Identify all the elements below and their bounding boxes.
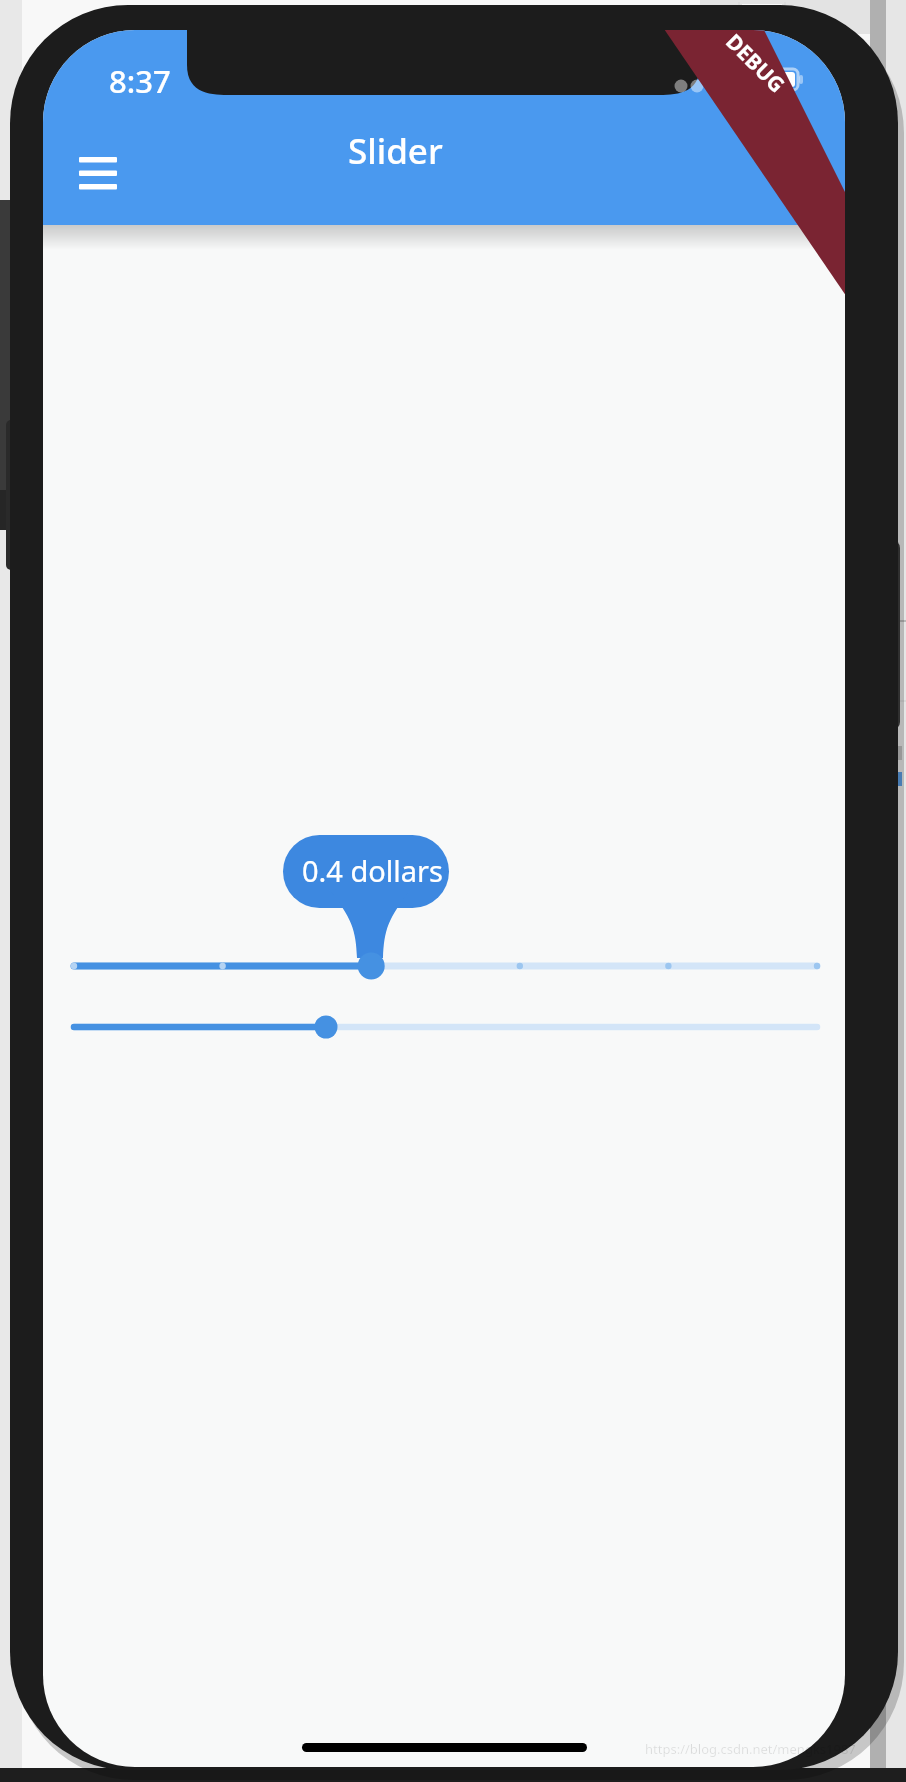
staticText: DEBUG (719, 27, 791, 99)
button[interactable]: Value slider (60, 995, 830, 1059)
staticText: 8:37 (109, 60, 171, 102)
staticText: 0.4 dollars (302, 851, 443, 890)
button[interactable]: Dollars slider, 0.4 dollars (60, 930, 830, 1002)
staticText: https://blog.csdn.net/mengks1987 (645, 1740, 856, 1758)
button[interactable]: Open navigation menu (55, 120, 127, 192)
staticText: Slider (348, 127, 443, 175)
